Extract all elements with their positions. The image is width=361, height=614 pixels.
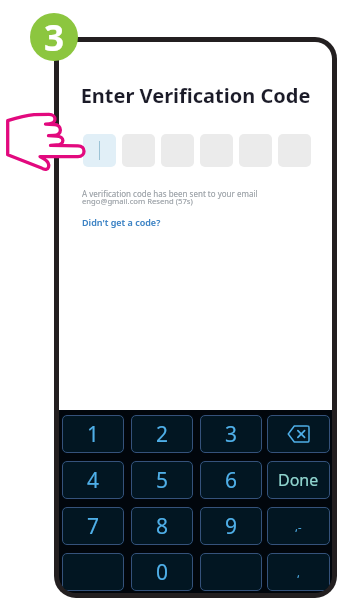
staticText: 3 (44, 14, 65, 61)
button[interactable]: 4 (62, 461, 124, 499)
button[interactable]: 3 (200, 415, 262, 453)
staticText: Enter Verification Code (59, 82, 332, 109)
staticText: , (297, 565, 300, 580)
button[interactable]: 2 (131, 415, 193, 453)
staticText: 1 (87, 420, 100, 449)
button[interactable] (83, 134, 116, 167)
button[interactable] (62, 553, 124, 591)
button[interactable]: ,- (267, 507, 330, 545)
staticText: 8 (156, 512, 169, 541)
button[interactable]: 9 (200, 507, 262, 545)
button[interactable]: 7 (62, 507, 124, 545)
staticText: A verification code has been sent to you… (82, 188, 258, 199)
staticText: 2 (156, 420, 169, 449)
staticText: ,- (295, 519, 302, 534)
button[interactable]: 8 (131, 507, 193, 545)
button[interactable]: 0 (131, 553, 193, 591)
staticText: 0 (156, 558, 169, 587)
staticText: 7 (87, 512, 100, 541)
staticText: 9 (225, 512, 238, 541)
button[interactable]: 5 (131, 461, 193, 499)
button[interactable]: 6 (200, 461, 262, 499)
button[interactable]: 1 (62, 415, 124, 453)
staticText: 6 (225, 466, 238, 495)
staticText: engo@gmail.com Resend (57s) (82, 196, 193, 206)
button[interactable]: Backspace (267, 415, 330, 453)
staticText: 5 (156, 466, 169, 495)
staticText: 4 (87, 466, 100, 495)
button[interactable]: Done (267, 461, 330, 499)
button[interactable] (200, 553, 262, 591)
staticText: 3 (225, 420, 238, 449)
staticText: Done (278, 469, 319, 491)
button[interactable]: , (267, 553, 330, 591)
button[interactable]: Didn't get a code? (82, 216, 161, 228)
